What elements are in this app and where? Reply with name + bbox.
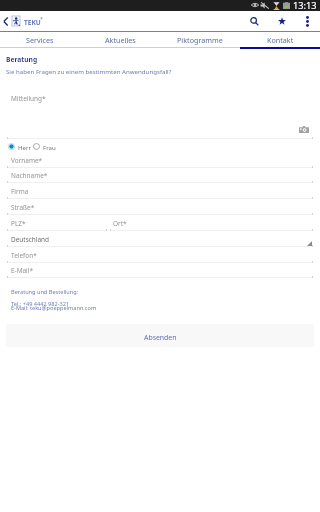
button[interactable]: Services (0, 32, 80, 47)
staticText: Tel.: +49 4442 982-321 (11, 300, 70, 308)
staticText: Firma (11, 187, 29, 196)
staticText: E-Mail* (11, 266, 33, 275)
button[interactable]: More options (298, 11, 317, 31)
staticText: 13:13 (293, 0, 317, 12)
button[interactable]: PLZ* (7, 216, 107, 231)
button[interactable]: Telefon* (7, 248, 313, 263)
staticText: Telefon* (11, 251, 37, 260)
staticText: Absenden (144, 333, 177, 342)
staticText: Aktuelles (105, 35, 136, 45)
button[interactable]: Aktuelles (80, 32, 160, 47)
staticText: Beratung (6, 55, 38, 64)
staticText: Mitteilung* (11, 94, 46, 103)
staticText: Frau (43, 143, 56, 151)
staticText: Deutschland (11, 235, 49, 244)
staticText: Vorname* (11, 156, 43, 165)
button[interactable]: Search (244, 11, 265, 31)
staticText: Ort* (113, 219, 127, 228)
staticText: Kontakt (267, 35, 294, 45)
button[interactable]: Nachname* (7, 168, 313, 183)
staticText: Beratung und Bestellung: (11, 288, 79, 296)
staticText: Herr (18, 143, 31, 151)
button[interactable]: Mitteilung* (7, 90, 313, 138)
staticText: Services (26, 35, 54, 45)
staticText: Piktogramme (177, 35, 223, 45)
staticText: E-Mail: teku@poeppelmann.com (11, 304, 97, 312)
button[interactable]: Herr (8, 141, 31, 152)
staticText: Sie haben Fragen zu einem bestimmten Anw… (6, 67, 172, 75)
button[interactable]: Frau (33, 141, 56, 152)
button[interactable]: Favourite (271, 11, 292, 31)
button[interactable]: Piktogramme (160, 32, 240, 47)
staticText: Straße* (11, 203, 35, 212)
button[interactable]: Absenden (6, 324, 314, 347)
button[interactable]: Ort* (110, 216, 313, 231)
staticText: PLZ* (11, 219, 26, 228)
staticText: ® (40, 16, 43, 21)
button[interactable]: Vorname* (7, 153, 313, 168)
button[interactable]: E-Mail* (7, 263, 313, 278)
button[interactable]: Firma (7, 184, 313, 199)
button[interactable]: Deutschland (7, 232, 313, 247)
button[interactable]: Back (0, 11, 11, 31)
staticText: TEKU (24, 18, 41, 27)
staticText: Nachname* (11, 171, 48, 180)
button[interactable]: Kontakt (240, 32, 320, 47)
button[interactable]: Straße* (7, 200, 313, 215)
